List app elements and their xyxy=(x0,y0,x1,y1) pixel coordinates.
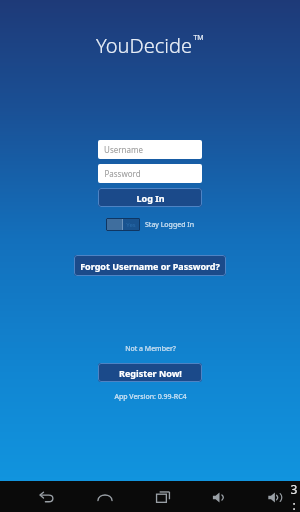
button[interactable]: 3:35 PM xyxy=(288,481,300,512)
button[interactable]: Forgot Username or Password? xyxy=(74,255,226,276)
staticText: App Version: 0.99-RC4 xyxy=(114,392,187,402)
button[interactable]: Recent apps xyxy=(150,484,176,510)
staticText: TM xyxy=(193,33,204,43)
staticText: Password xyxy=(104,168,141,179)
staticText: Forgot Username or Password? xyxy=(80,260,220,272)
button[interactable]: Home xyxy=(92,484,118,510)
staticText: Username xyxy=(104,144,143,155)
staticText: Register Now! xyxy=(119,367,182,379)
button[interactable]: Register Now! xyxy=(98,363,202,382)
button[interactable]: Username xyxy=(98,140,202,159)
staticText: 3:35 PM xyxy=(290,481,298,512)
button[interactable]: Volume down xyxy=(206,484,232,510)
staticText: Log In xyxy=(136,192,165,204)
button[interactable]: Back xyxy=(34,484,60,510)
staticText: YouDecide xyxy=(96,32,192,59)
staticText: Yes xyxy=(126,221,136,229)
button[interactable]: Volume up xyxy=(262,484,288,510)
staticText: Stay Logged In xyxy=(145,220,194,230)
button[interactable]: Yes xyxy=(104,216,196,233)
button[interactable]: Password xyxy=(98,164,202,183)
staticText: Not a Member? xyxy=(125,344,176,354)
button[interactable]: Log In xyxy=(98,188,202,207)
